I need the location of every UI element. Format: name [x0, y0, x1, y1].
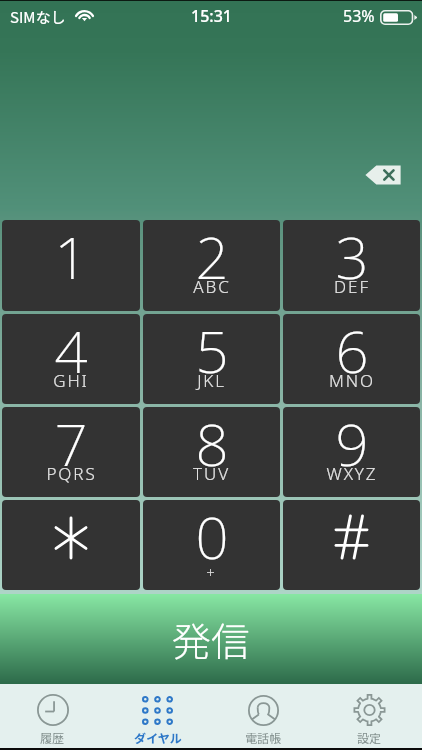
button[interactable]: 8	[143, 407, 280, 497]
staticText: 53%	[343, 5, 375, 27]
staticText: 1	[54, 220, 88, 296]
button[interactable]: 1	[2, 220, 140, 311]
staticText: 15:31	[191, 5, 232, 27]
staticText: PQRS	[46, 462, 97, 485]
button[interactable]: 発信	[0, 594, 422, 684]
button[interactable]	[2, 500, 140, 590]
staticText: ダイヤル	[134, 729, 182, 746]
button[interactable]: 電話帳	[210, 684, 316, 747]
staticText: SIMなし	[10, 6, 66, 28]
staticText: 9	[335, 407, 369, 483]
button[interactable]: 4	[2, 314, 140, 404]
button[interactable]	[283, 500, 420, 590]
staticText: 0	[195, 500, 229, 576]
staticText: GHI	[53, 369, 89, 392]
button[interactable]: ダイヤル	[105, 684, 210, 747]
button[interactable]: 設定	[316, 684, 422, 747]
staticText: 5	[195, 314, 229, 390]
staticText: 2	[195, 220, 229, 296]
staticText: MNO	[329, 369, 375, 392]
staticText: 履歴	[40, 729, 65, 746]
button[interactable]: 9	[283, 407, 420, 497]
staticText: +	[206, 562, 217, 582]
staticText: ABC	[193, 275, 231, 298]
staticText: 7	[54, 407, 88, 483]
button[interactable]: 7	[2, 407, 140, 497]
button[interactable]: Backspace	[361, 163, 405, 187]
staticText: 3	[335, 220, 369, 296]
button[interactable]: 履歴	[0, 684, 105, 747]
staticText: TUV	[193, 462, 230, 485]
staticText: 電話帳	[245, 729, 282, 746]
staticText: 設定	[357, 729, 382, 746]
staticText: WXYZ	[326, 462, 378, 485]
staticText: 8	[195, 407, 229, 483]
staticText: 発信	[172, 611, 251, 667]
staticText: DEF	[334, 275, 370, 298]
staticText: JKL	[197, 369, 226, 392]
button[interactable]: 3	[283, 220, 420, 311]
staticText: 4	[54, 314, 88, 390]
staticText: 6	[335, 314, 369, 390]
button[interactable]: 5	[143, 314, 280, 404]
button[interactable]: 6	[283, 314, 420, 404]
button[interactable]: 0	[143, 500, 280, 590]
button[interactable]: 2	[143, 220, 280, 311]
